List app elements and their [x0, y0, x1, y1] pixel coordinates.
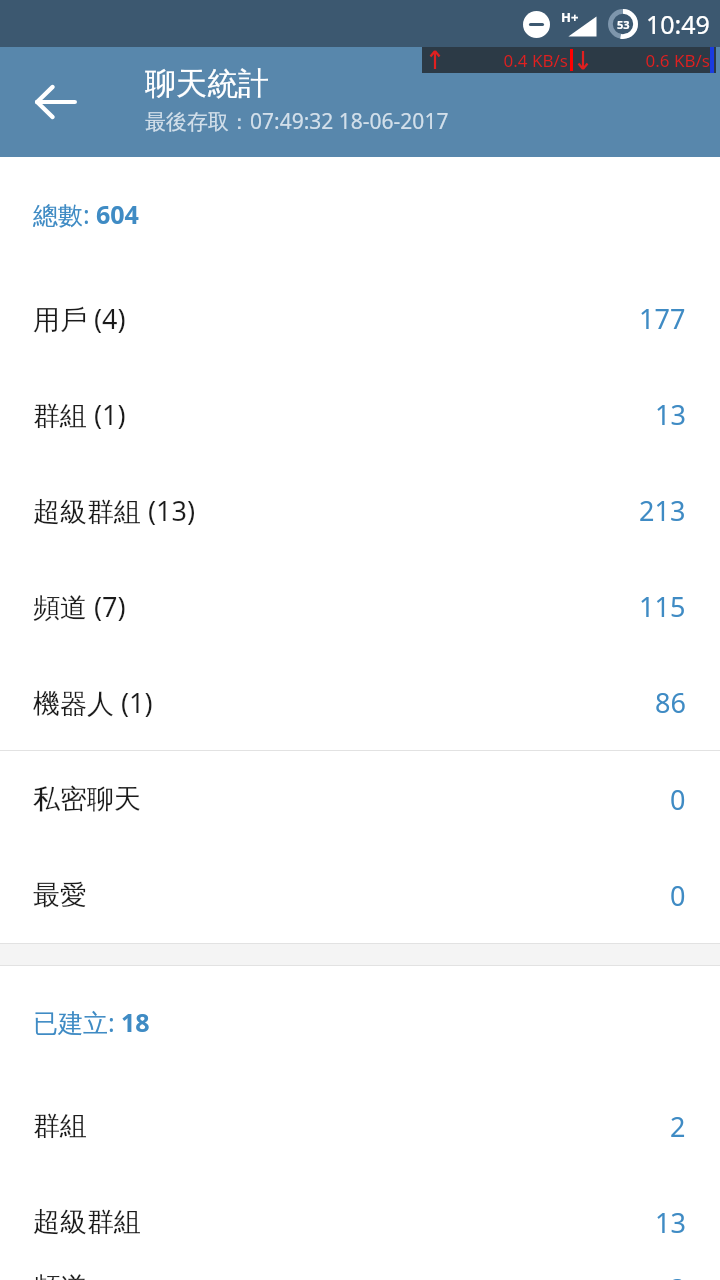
staticText: 86 [655, 684, 686, 721]
staticText: 最愛 [33, 878, 670, 912]
button[interactable]: 私密聊天 [0, 751, 720, 847]
staticText: 0 [670, 877, 686, 914]
staticText: 總數: [33, 197, 90, 231]
button[interactable]: 超級群組 (13) [0, 462, 720, 558]
button[interactable]: 機器人 (1) [0, 654, 720, 750]
staticText: 用戶 (4) [33, 300, 639, 337]
staticText: 53 [617, 17, 630, 32]
button[interactable]: 頻道 [0, 1270, 720, 1280]
staticText: 3 [670, 1270, 686, 1280]
staticText: 機器人 (1) [33, 684, 655, 721]
staticText: 私密聊天 [33, 782, 670, 816]
button[interactable]: 超級群組 [0, 1174, 720, 1270]
staticText: 頻道 (7) [33, 588, 639, 625]
staticText: 213 [639, 492, 686, 529]
staticText: 最後存取：07:49:32 18-06-2017 [145, 107, 449, 136]
staticText: 聊天統計 [145, 64, 269, 103]
staticText: 604 [96, 197, 139, 231]
staticText: 13 [655, 396, 686, 433]
staticText: 群組 (1) [33, 396, 655, 433]
staticText: 已建立: [33, 1005, 115, 1039]
staticText: 超級群組 (13) [33, 492, 639, 529]
other: Do not disturb [523, 11, 550, 38]
staticText: 10:49 [646, 7, 710, 41]
staticText: 177 [639, 300, 686, 337]
button[interactable]: 群組 (1) [0, 366, 720, 462]
button[interactable]: 頻道 (7) [0, 558, 720, 654]
staticText: 超級群組 [33, 1205, 655, 1239]
staticText: 18 [121, 1005, 150, 1039]
button[interactable]: 用戶 (4) [0, 270, 720, 366]
staticText: 群組 [33, 1109, 670, 1143]
staticText: 0 [670, 781, 686, 818]
staticText: 頻道 [33, 1270, 670, 1280]
staticText: 13 [655, 1204, 686, 1241]
button[interactable]: 最愛 [0, 847, 720, 943]
staticText: 2 [670, 1108, 686, 1145]
button[interactable]: 群組 [0, 1078, 720, 1174]
staticText: H+ [561, 8, 579, 26]
staticText: 0.4 KB/s [442, 49, 568, 72]
button[interactable]: Back [8, 54, 104, 150]
staticText: 0.6 KB/s [590, 49, 710, 72]
other: Battery 53 percent [608, 9, 638, 39]
staticText: 115 [639, 588, 686, 625]
